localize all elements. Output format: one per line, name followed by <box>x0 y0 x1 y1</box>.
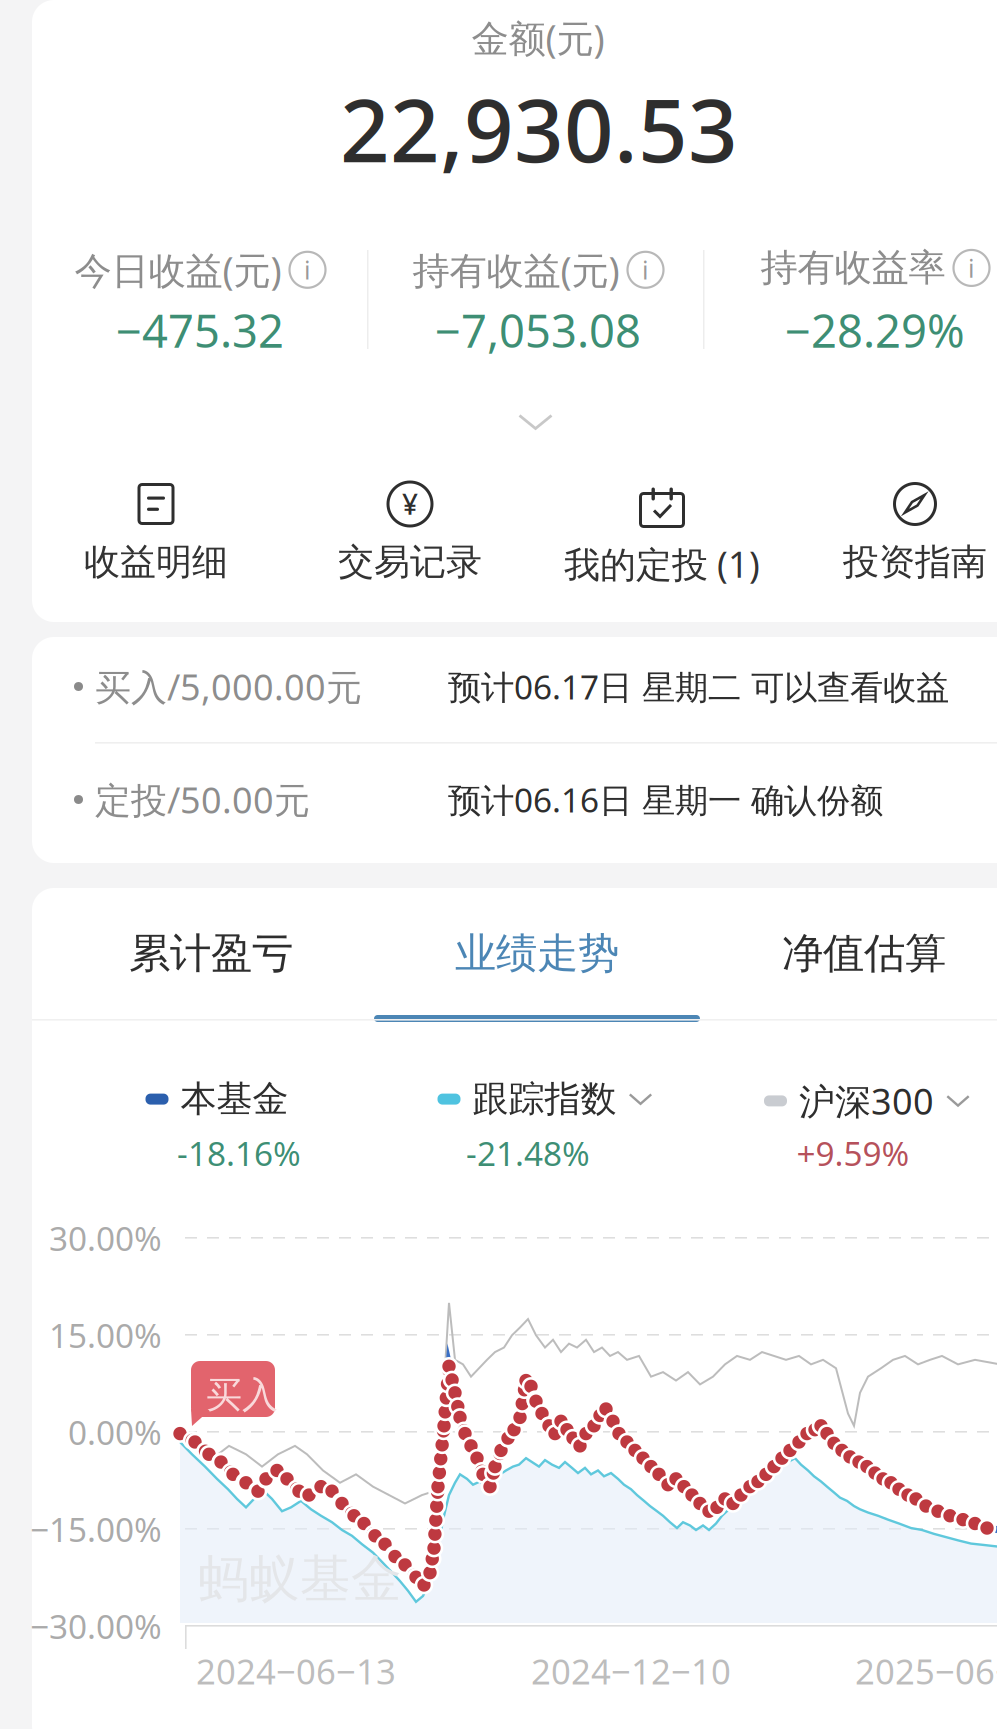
staticText: 0.00% <box>68 1410 162 1454</box>
staticText: 持有收益(元) <box>412 245 619 295</box>
staticText: 金额(元) <box>471 13 604 63</box>
button[interactable]: 投资指南 <box>790 482 997 592</box>
button[interactable]: 收益明细 <box>31 482 281 592</box>
staticText: 30.00% <box>49 1216 162 1260</box>
staticText: 持有收益率 <box>760 245 945 291</box>
staticText: 买入 <box>206 1373 278 1417</box>
staticText: i <box>968 251 975 285</box>
staticText: 业绩走势 <box>455 928 619 979</box>
staticText: ¥ <box>402 485 418 523</box>
staticText: 22,930.53 <box>340 71 738 186</box>
staticText: i <box>304 253 311 287</box>
button[interactable]: ¥ <box>285 482 535 592</box>
staticText: -18.16% <box>177 1131 301 1175</box>
staticText: −30.00% <box>30 1604 162 1648</box>
staticText: 定投/50.00元 <box>95 776 310 823</box>
button[interactable]: 定投/50.00元 <box>0 742 997 857</box>
button[interactable]: 累计盈亏 <box>48 928 374 1028</box>
button[interactable]: 我的定投 (1) <box>537 482 787 592</box>
staticText: 2024−12−10 <box>531 1648 731 1694</box>
staticText: 跟踪指数 <box>472 1077 616 1121</box>
staticText: 买入/5,000.00元 <box>95 663 362 710</box>
staticText: 我的定投 (1) <box>564 540 760 588</box>
staticText: −28.29% <box>785 300 965 360</box>
staticText: −475.32 <box>116 300 284 360</box>
staticText: −15.00% <box>30 1507 162 1551</box>
staticText: 投资指南 <box>843 540 987 584</box>
button[interactable]: 买入/5,000.00元 <box>0 629 997 744</box>
staticText: 收益明细 <box>84 540 228 584</box>
button[interactable]: 业绩走势 <box>374 928 700 1028</box>
staticText: i <box>642 253 649 287</box>
staticText: 交易记录 <box>338 540 482 584</box>
staticText: 2024−06−13 <box>196 1648 396 1694</box>
staticText: 累计盈亏 <box>129 928 293 979</box>
staticText: -21.48% <box>466 1131 590 1175</box>
staticText: 沪深300 <box>799 1077 934 1125</box>
staticText: 预计06.17日 星期二 可以查看收益 <box>448 664 949 709</box>
staticText: +9.59% <box>796 1131 909 1175</box>
staticText: 2025−06−1 <box>855 1648 997 1694</box>
staticText: 净值估算 <box>782 928 946 979</box>
staticText: 预计06.16日 星期一 确认份额 <box>448 777 883 822</box>
staticText: −7,053.08 <box>435 300 641 360</box>
staticText: 蚂蚁基金 <box>198 1548 402 1610</box>
staticText: 本基金 <box>180 1077 288 1121</box>
staticText: 今日收益(元) <box>74 245 281 295</box>
staticText: 15.00% <box>49 1313 162 1357</box>
button[interactable]: 净值估算 <box>701 928 997 1028</box>
